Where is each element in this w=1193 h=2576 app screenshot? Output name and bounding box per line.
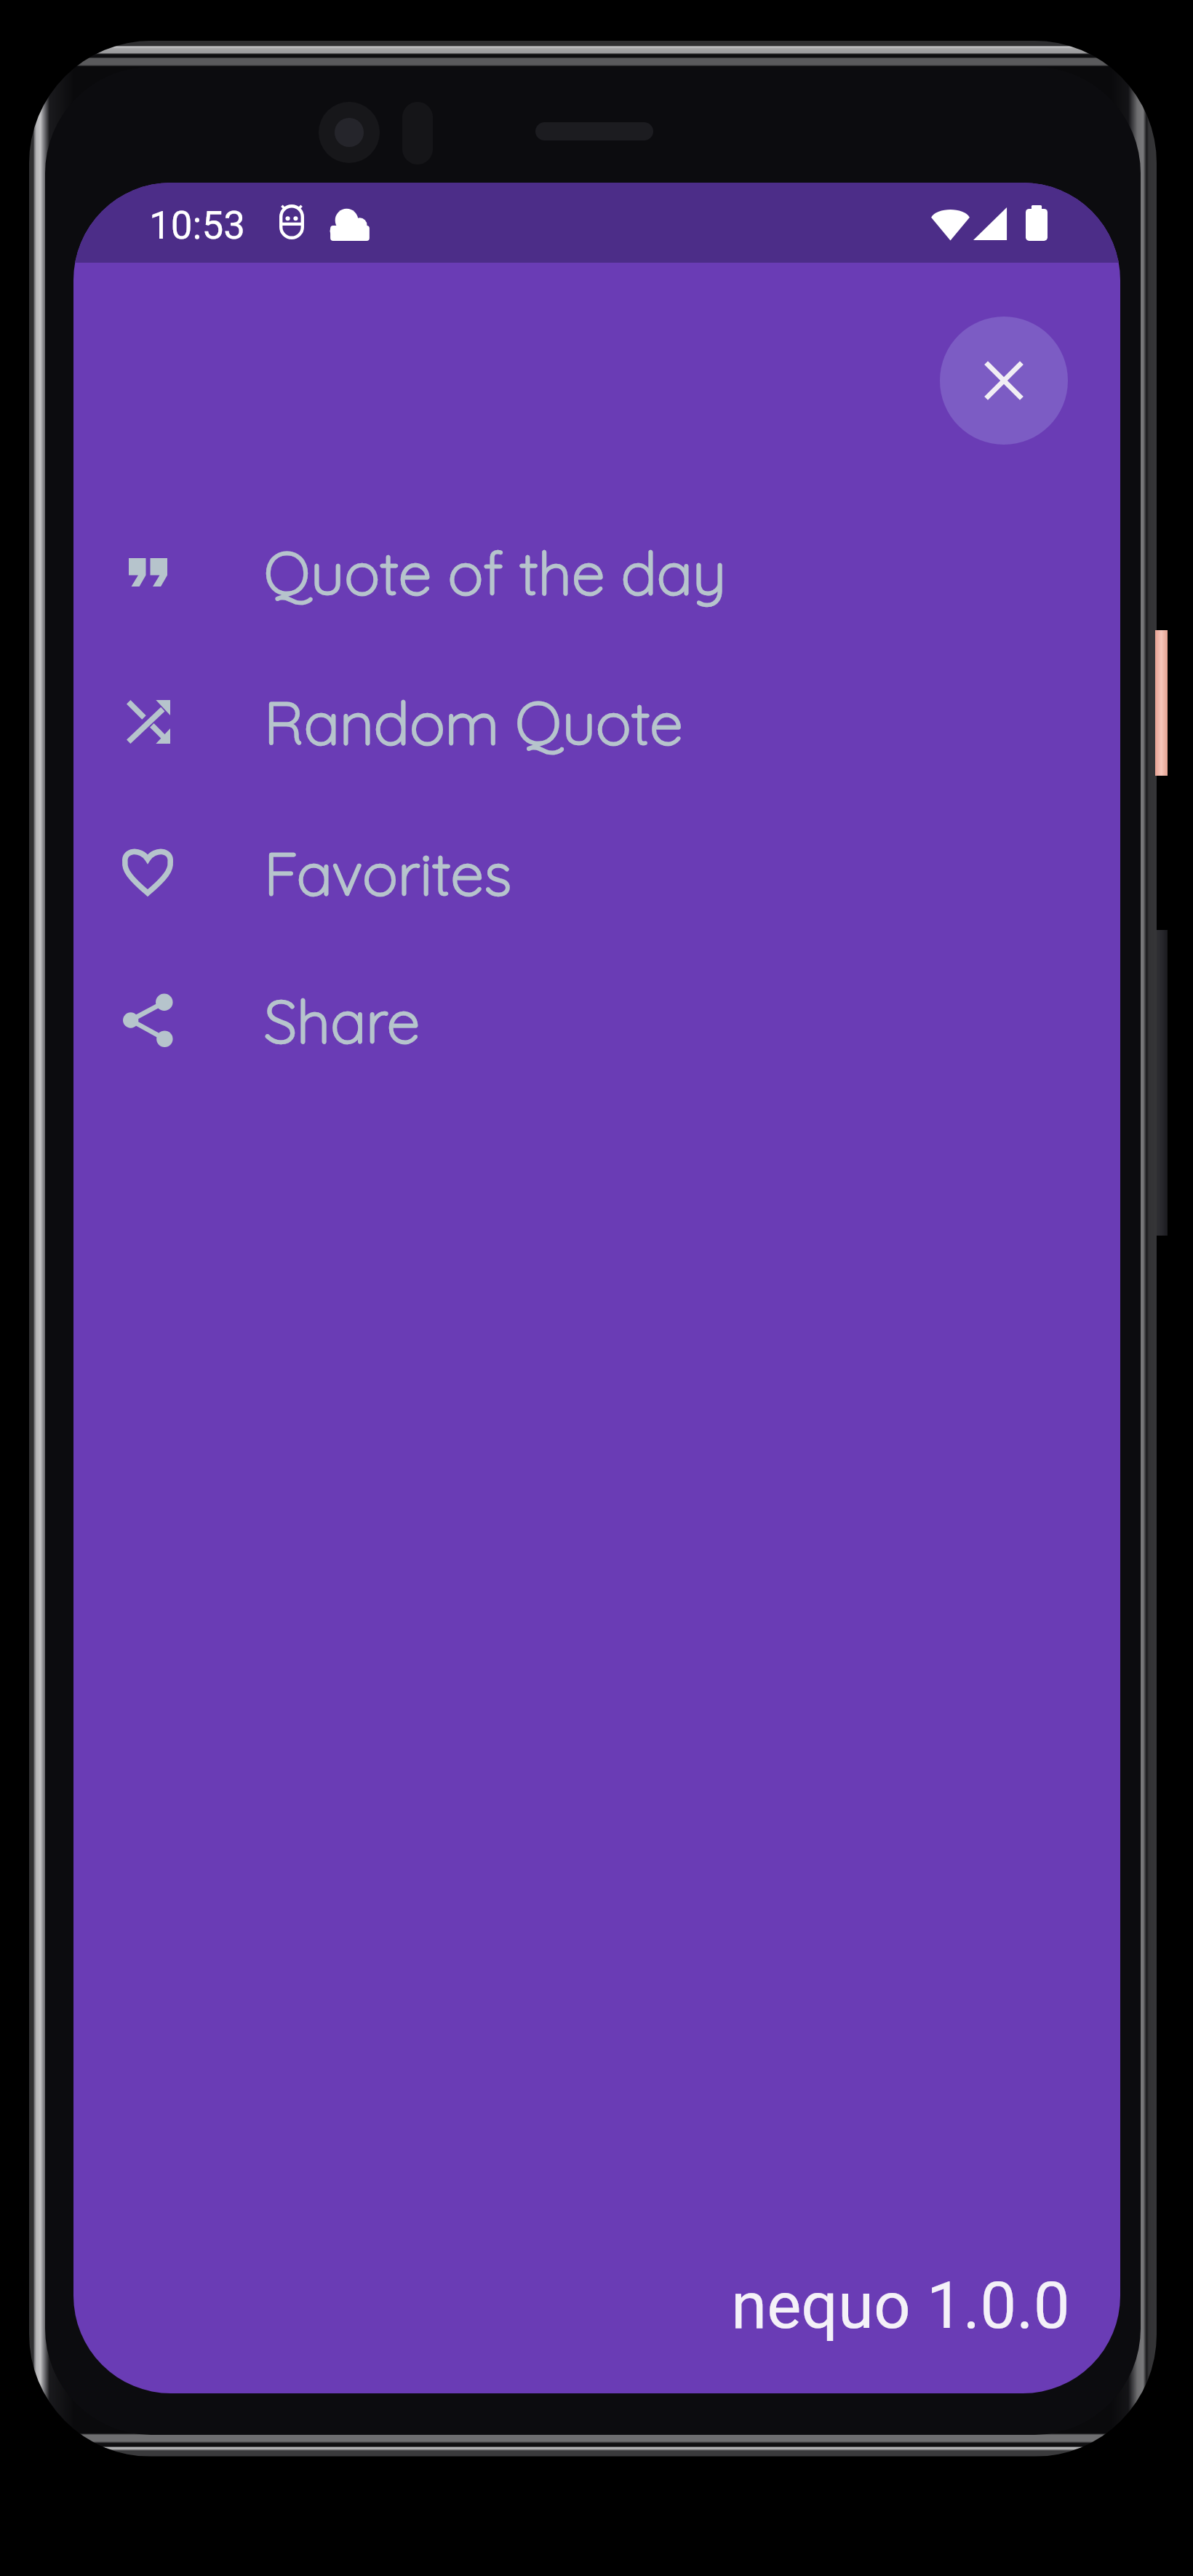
button[interactable]: Favorites [73,803,1120,942]
button[interactable]: Random Quote [73,653,1120,791]
button[interactable]: Quote of the day [73,503,1120,641]
staticText: Quote of the day [264,535,727,610]
staticText: nequo 1.0.0 [731,2267,1070,2343]
staticText: Share [264,983,420,1058]
button[interactable]: Share [73,951,1120,1089]
button[interactable]: Close [940,317,1068,445]
staticText: Random Quote [264,685,683,760]
staticText: Favorites [264,835,512,910]
staticText: 10:53 [149,203,245,248]
